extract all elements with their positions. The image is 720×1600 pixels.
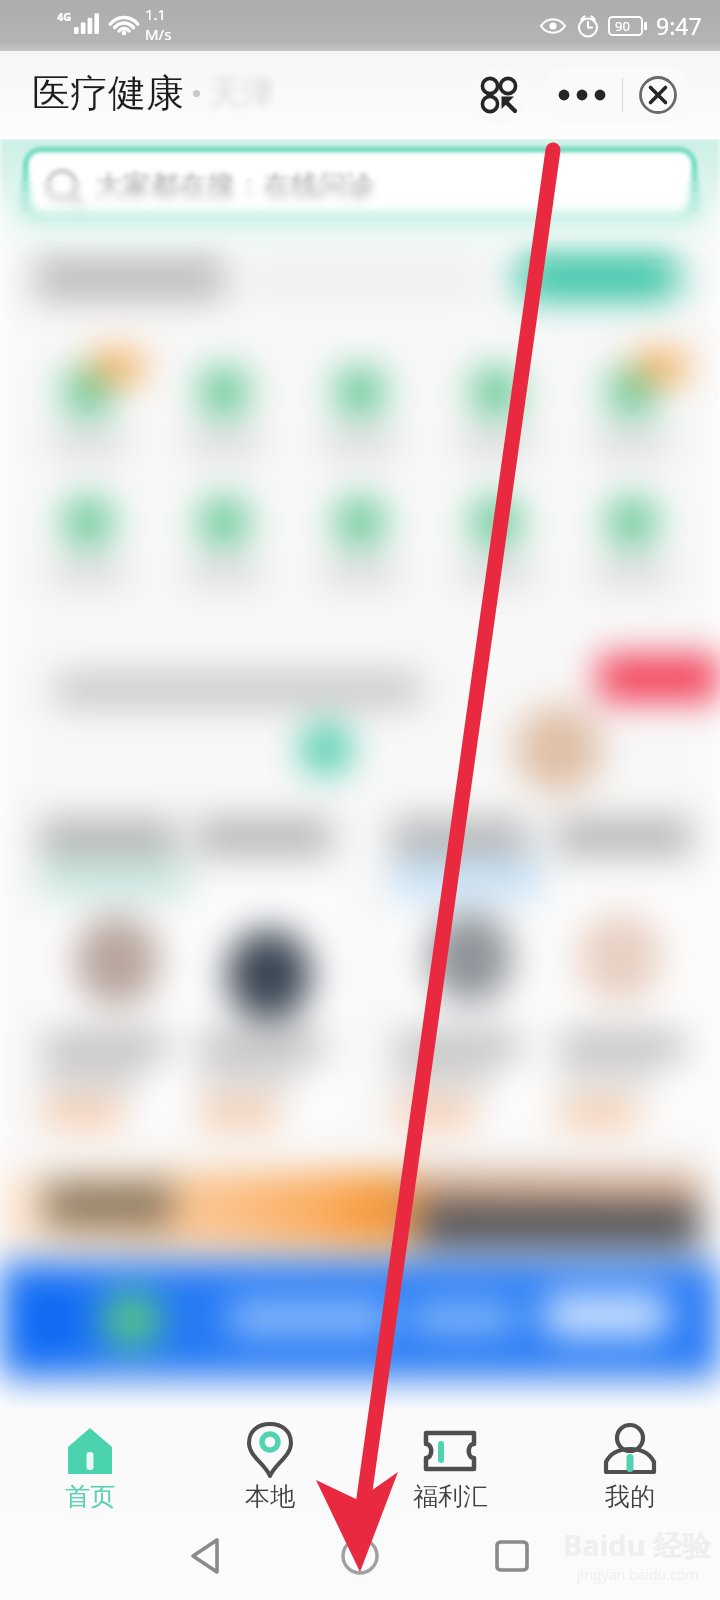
button[interactable]: 大家都在搜：在线问诊 <box>24 148 696 220</box>
button[interactable] <box>0 1172 702 1248</box>
button[interactable] <box>608 368 656 416</box>
button[interactable] <box>556 809 706 1129</box>
button[interactable] <box>336 498 384 546</box>
button[interactable] <box>608 368 656 416</box>
button[interactable] <box>472 368 520 416</box>
button[interactable] <box>556 809 706 1129</box>
button[interactable] <box>64 368 112 416</box>
button[interactable] <box>40 809 190 1129</box>
button[interactable] <box>0 1172 702 1248</box>
button[interactable] <box>608 498 656 546</box>
button[interactable]: 福利汇 <box>360 1409 540 1512</box>
button[interactable] <box>64 368 112 416</box>
button[interactable] <box>336 498 384 546</box>
button[interactable] <box>40 809 190 1129</box>
button[interactable] <box>196 809 346 1129</box>
button[interactable] <box>608 368 656 416</box>
button[interactable] <box>336 498 384 546</box>
button[interactable] <box>200 368 248 416</box>
button[interactable] <box>608 368 656 416</box>
button[interactable] <box>336 368 384 416</box>
button[interactable] <box>336 368 384 416</box>
button[interactable]: More <box>542 66 622 124</box>
button[interactable]: 大家都在搜：在线问诊 <box>24 148 696 220</box>
button[interactable] <box>200 498 248 546</box>
button[interactable] <box>556 809 706 1129</box>
button[interactable] <box>515 255 681 300</box>
button[interactable] <box>200 498 248 546</box>
button[interactable] <box>196 809 346 1129</box>
button[interactable] <box>608 368 656 416</box>
button[interactable] <box>0 1172 702 1248</box>
button[interactable] <box>64 498 112 546</box>
button[interactable] <box>196 809 346 1129</box>
button[interactable] <box>200 368 248 416</box>
button[interactable] <box>515 255 681 300</box>
button[interactable] <box>608 498 656 546</box>
button[interactable] <box>336 368 384 416</box>
button[interactable] <box>472 368 520 416</box>
button[interactable] <box>0 1172 702 1248</box>
button[interactable] <box>200 368 248 416</box>
button[interactable] <box>515 255 681 300</box>
button[interactable] <box>200 498 248 546</box>
button[interactable] <box>515 255 681 300</box>
button[interactable] <box>200 498 248 546</box>
button[interactable] <box>64 368 112 416</box>
button[interactable] <box>64 368 112 416</box>
button[interactable] <box>336 368 384 416</box>
button[interactable] <box>64 498 112 546</box>
button[interactable] <box>200 368 248 416</box>
button[interactable] <box>196 809 346 1129</box>
button[interactable] <box>608 368 656 416</box>
button[interactable] <box>0 1262 720 1378</box>
button[interactable] <box>200 498 248 546</box>
button[interactable] <box>472 368 520 416</box>
button[interactable] <box>515 255 681 300</box>
button[interactable] <box>336 498 384 546</box>
button[interactable] <box>608 498 656 546</box>
button[interactable] <box>392 809 542 1129</box>
button[interactable] <box>196 809 346 1129</box>
button[interactable] <box>40 809 190 1129</box>
button[interactable] <box>336 498 384 546</box>
button[interactable] <box>336 368 384 416</box>
button[interactable] <box>0 1172 702 1248</box>
button[interactable] <box>200 368 248 416</box>
button[interactable]: 大家都在搜：在线问诊 <box>24 148 696 220</box>
button[interactable] <box>472 368 520 416</box>
button[interactable] <box>40 809 190 1129</box>
button[interactable] <box>0 1262 720 1378</box>
button[interactable] <box>0 1172 702 1248</box>
button[interactable] <box>64 498 112 546</box>
button[interactable] <box>196 809 346 1129</box>
button[interactable] <box>392 809 542 1129</box>
button[interactable] <box>472 498 520 546</box>
button[interactable] <box>472 368 520 416</box>
button[interactable] <box>608 498 656 546</box>
button[interactable] <box>200 368 248 416</box>
button[interactable] <box>64 368 112 416</box>
button[interactable] <box>608 368 656 416</box>
button[interactable] <box>0 1262 720 1378</box>
button[interactable] <box>200 368 248 416</box>
button[interactable] <box>200 498 248 546</box>
button[interactable] <box>64 498 112 546</box>
button[interactable] <box>200 498 248 546</box>
button[interactable] <box>336 498 384 546</box>
button[interactable] <box>472 498 520 546</box>
button[interactable]: 本地 <box>180 1409 360 1512</box>
button[interactable]: 大家都在搜：在线问诊 <box>24 148 696 220</box>
button[interactable] <box>196 809 346 1129</box>
button[interactable] <box>0 1262 720 1378</box>
button[interactable] <box>472 498 520 546</box>
button[interactable]: Recent apps <box>482 1526 542 1586</box>
button[interactable] <box>392 809 542 1129</box>
button[interactable] <box>40 809 190 1129</box>
button[interactable] <box>336 498 384 546</box>
button[interactable]: Back <box>175 1526 235 1586</box>
button[interactable] <box>0 1172 702 1248</box>
button[interactable]: 我的 <box>540 1409 720 1512</box>
button[interactable]: 大家都在搜：在线问诊 <box>24 148 696 220</box>
button[interactable]: 大家都在搜：在线问诊 <box>24 148 696 220</box>
